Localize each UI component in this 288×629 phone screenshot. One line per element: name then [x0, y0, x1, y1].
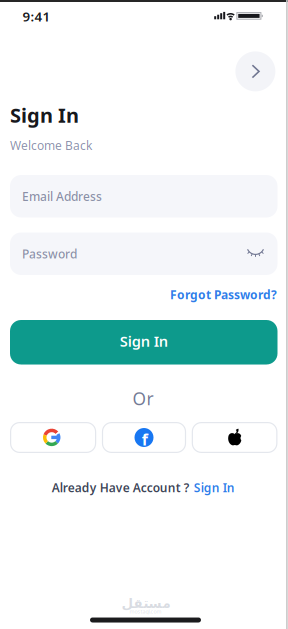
staticText: 9:41 — [22, 7, 50, 25]
button[interactable]: Sign In — [194, 479, 235, 495]
staticText: مستقل — [121, 596, 170, 611]
button[interactable]: Forgot Password? — [170, 287, 277, 303]
button[interactable]: Sign in with Apple — [192, 422, 277, 453]
button[interactable]: Sign In — [10, 320, 277, 364]
button[interactable]: Password — [10, 232, 277, 275]
button[interactable]: Sign in with Facebook — [102, 422, 186, 453]
staticText: mostaql.com — [129, 608, 161, 615]
staticText: Forgot Password? — [170, 287, 277, 303]
button[interactable]: Email Address — [10, 175, 277, 217]
staticText: Already Have Account ? — [52, 479, 190, 495]
staticText: Email Address — [22, 188, 102, 204]
staticText: Password — [22, 246, 77, 262]
staticText: Sign In — [120, 331, 168, 351]
button[interactable]: Show password — [240, 239, 270, 263]
staticText: f — [142, 429, 148, 450]
button[interactable]: Skip — [235, 51, 275, 91]
staticText: Sign In — [10, 102, 79, 128]
staticText: Or — [132, 387, 153, 410]
staticText: Welcome Back — [10, 137, 92, 153]
staticText: Sign In — [194, 479, 235, 495]
button[interactable]: Sign in with Google — [10, 422, 96, 453]
